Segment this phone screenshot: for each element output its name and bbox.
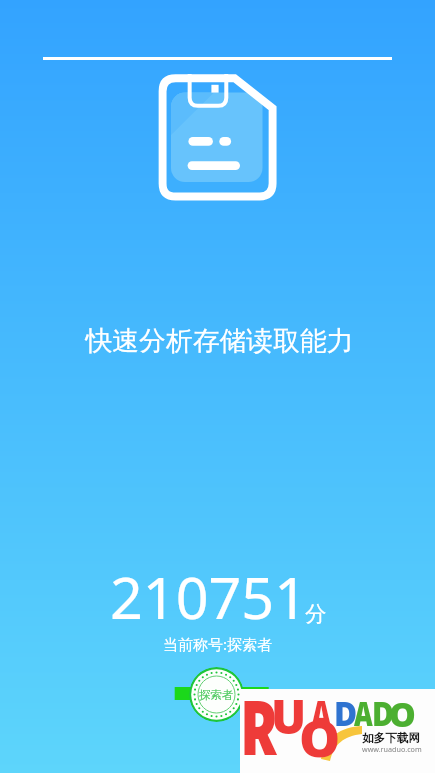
staticText: D (334, 691, 358, 736)
staticText: A (311, 687, 332, 740)
staticText: U (271, 684, 307, 748)
button[interactable]: 存储测试 (158, 74, 280, 205)
staticText: D (372, 691, 394, 736)
button[interactable]: 探索者 (189, 667, 244, 722)
staticText: R (240, 671, 279, 755)
staticText: www.ruaduo.com (362, 744, 422, 754)
staticText: O (389, 691, 416, 737)
staticText: 如多下载网 (362, 731, 420, 746)
staticText: 当前称号:探索者 (0, 634, 435, 654)
staticText: A (354, 691, 373, 736)
staticText: 分 (305, 600, 327, 627)
staticText: 探索者 (199, 688, 234, 702)
staticText: O (299, 703, 340, 771)
staticText: 210751 (110, 558, 307, 636)
staticText: 快速分析存储读取能力 (2, 324, 435, 358)
